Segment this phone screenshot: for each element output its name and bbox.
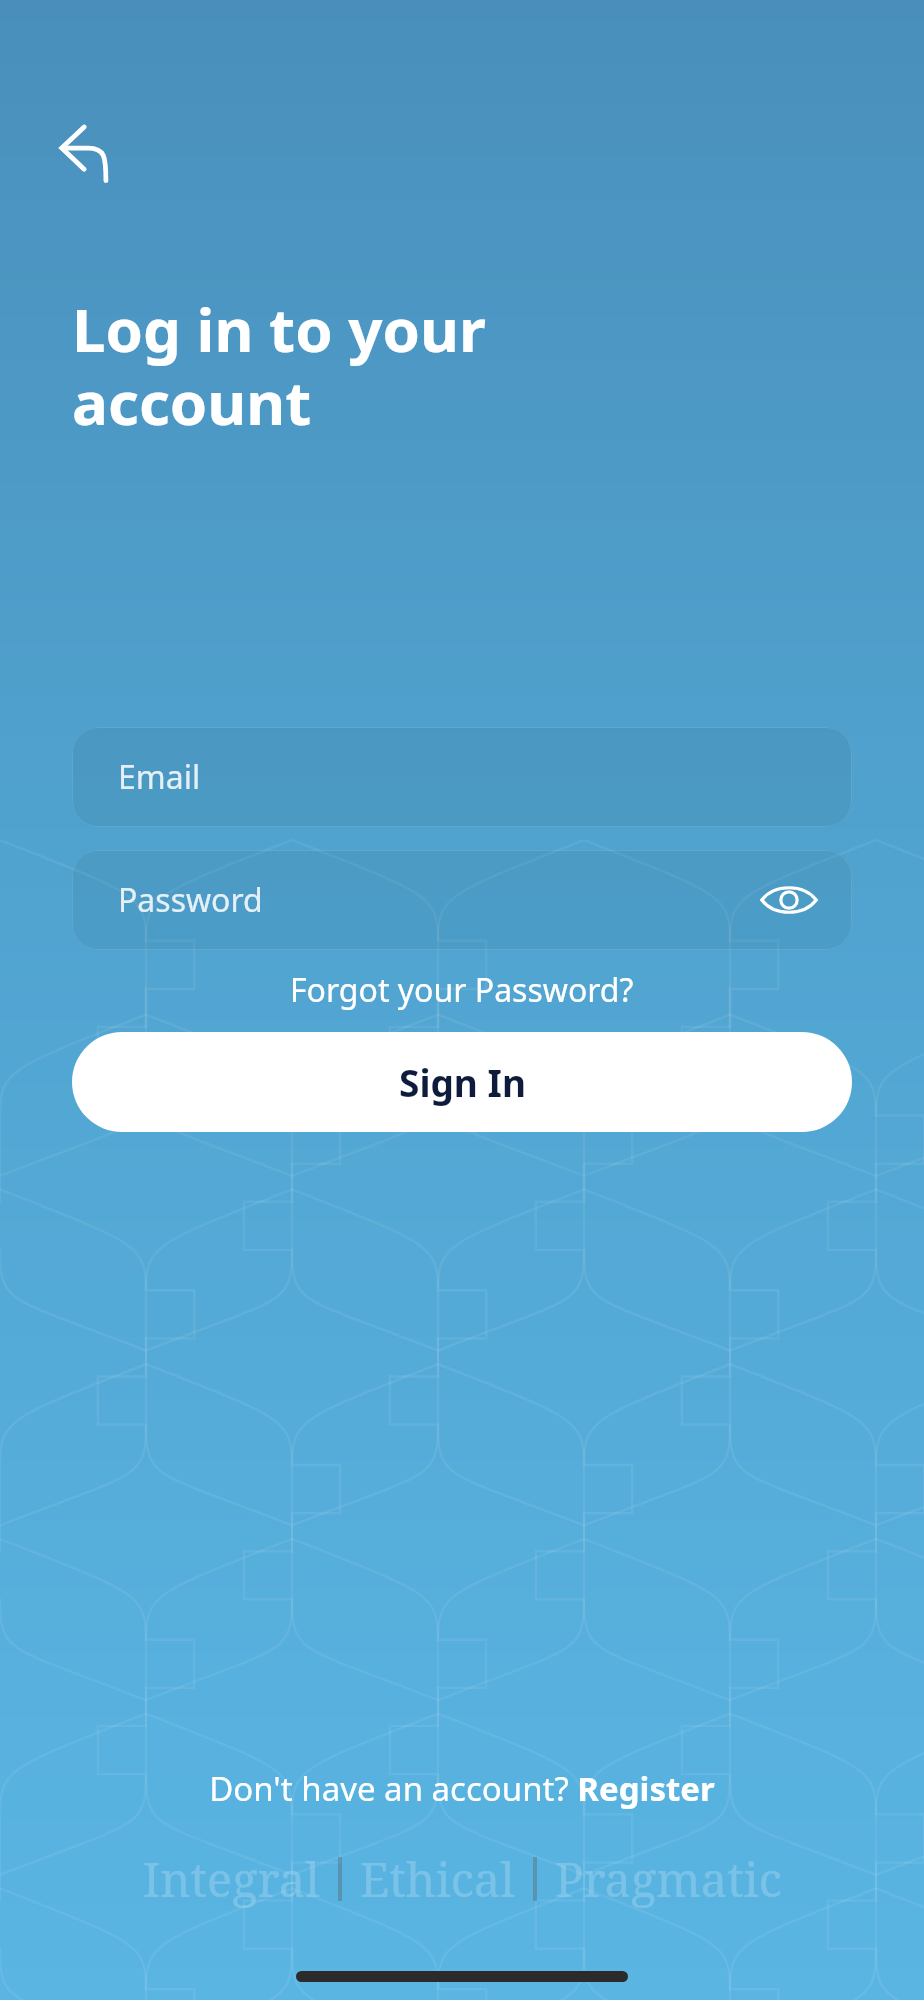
staticText: Log in to your account: [72, 288, 486, 443]
staticText: Password: [118, 878, 263, 922]
staticText: Integral: [143, 1847, 320, 1911]
staticText: Ethical: [360, 1847, 515, 1911]
button[interactable]: Don't have an account? Register: [0, 1766, 924, 1811]
button[interactable]: Forgot your Password?: [72, 960, 852, 1020]
button[interactable]: Show password: [754, 865, 824, 935]
staticText: Pragmatic: [555, 1847, 782, 1911]
button[interactable]: Back: [56, 118, 120, 182]
staticText: Don't have an account? Register: [209, 1766, 715, 1811]
staticText: Sign In: [399, 1057, 526, 1107]
button[interactable]: Email: [72, 727, 852, 827]
button[interactable]: Password: [72, 850, 852, 950]
staticText: Email: [118, 755, 201, 799]
staticText: Forgot your Password?: [290, 968, 634, 1012]
button[interactable]: Sign In: [72, 1032, 852, 1132]
